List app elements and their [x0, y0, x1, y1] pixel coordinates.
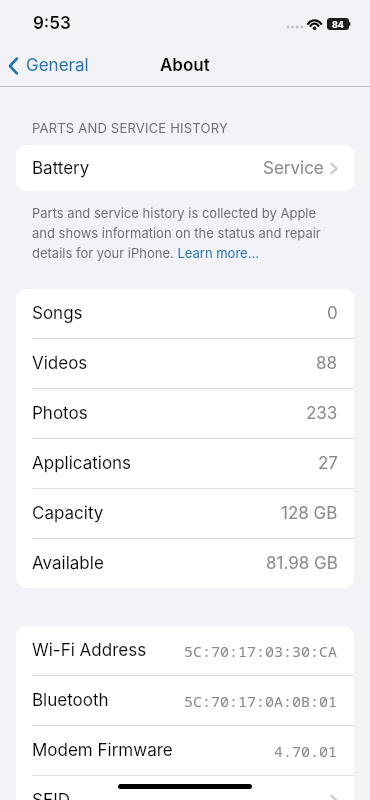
staticText: Available: [32, 553, 104, 574]
staticText: SEID: [32, 790, 70, 800]
staticText: Service: [263, 158, 324, 179]
staticText: Songs: [32, 303, 83, 324]
staticText: About: [160, 55, 210, 76]
staticText: 4.70.01: [274, 741, 338, 761]
staticText: Videos: [32, 353, 88, 374]
staticText: 128 GB: [281, 503, 338, 524]
staticText: Photos: [32, 403, 88, 424]
staticText: 5C:70:17:03:30:CA: [184, 641, 338, 661]
staticText: Wi-Fi Address: [32, 640, 147, 661]
staticText: 27: [318, 453, 338, 474]
staticText: 88: [316, 353, 338, 374]
staticText: Bluetooth: [32, 690, 109, 711]
staticText: Applications: [32, 453, 132, 474]
staticText: Capacity: [32, 503, 104, 524]
staticText: PARTS AND SERVICE HISTORY: [32, 120, 228, 136]
staticText: 5C:70:17:0A:0B:01: [184, 691, 338, 711]
staticText: 84: [332, 19, 344, 30]
staticText: 233: [306, 403, 338, 424]
staticText: Battery: [32, 158, 90, 179]
staticText: 0: [327, 303, 338, 324]
staticText: Modem Firmware: [32, 740, 173, 761]
staticText: 81.98 GB: [266, 553, 338, 574]
staticText: Parts and service history is collected b…: [32, 205, 321, 261]
staticText: General: [26, 55, 89, 76]
staticText: 9:53: [33, 13, 71, 34]
